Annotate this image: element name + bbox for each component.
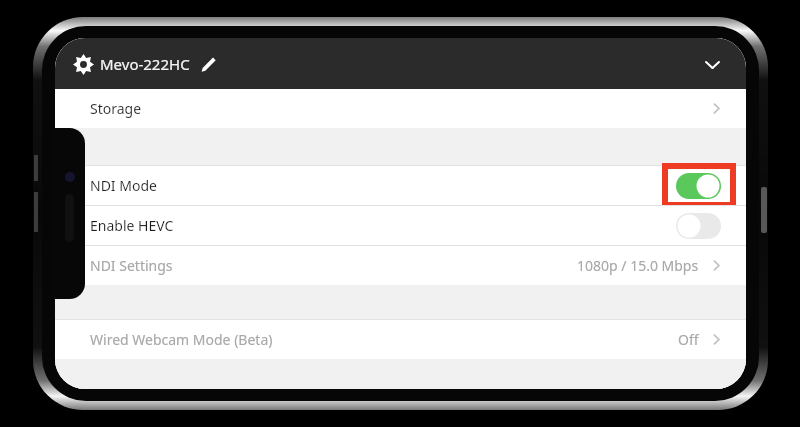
staticText: NDI Mode xyxy=(90,176,157,195)
staticText: Wired Webcam Mode (Beta) xyxy=(90,330,273,349)
staticText: 1080p / 15.0 Mbps xyxy=(577,256,699,275)
button[interactable]: Enable HEVC xyxy=(55,206,746,245)
button[interactable]: Settings xyxy=(66,47,100,81)
button[interactable]: Rename device xyxy=(195,51,221,77)
staticText: Storage xyxy=(90,99,142,118)
button[interactable]: NDI Mode xyxy=(55,166,746,205)
button[interactable]: NDI Settings xyxy=(55,246,746,285)
staticText: NDI Settings xyxy=(90,256,173,275)
button[interactable]: Storage xyxy=(55,89,746,128)
staticText: Enable HEVC xyxy=(90,216,174,235)
staticText: Mevo-222HC xyxy=(100,54,190,74)
button[interactable]: Collapse xyxy=(694,46,730,82)
button[interactable]: Wired Webcam Mode (Beta) xyxy=(55,320,746,359)
staticText: Off xyxy=(678,330,699,349)
